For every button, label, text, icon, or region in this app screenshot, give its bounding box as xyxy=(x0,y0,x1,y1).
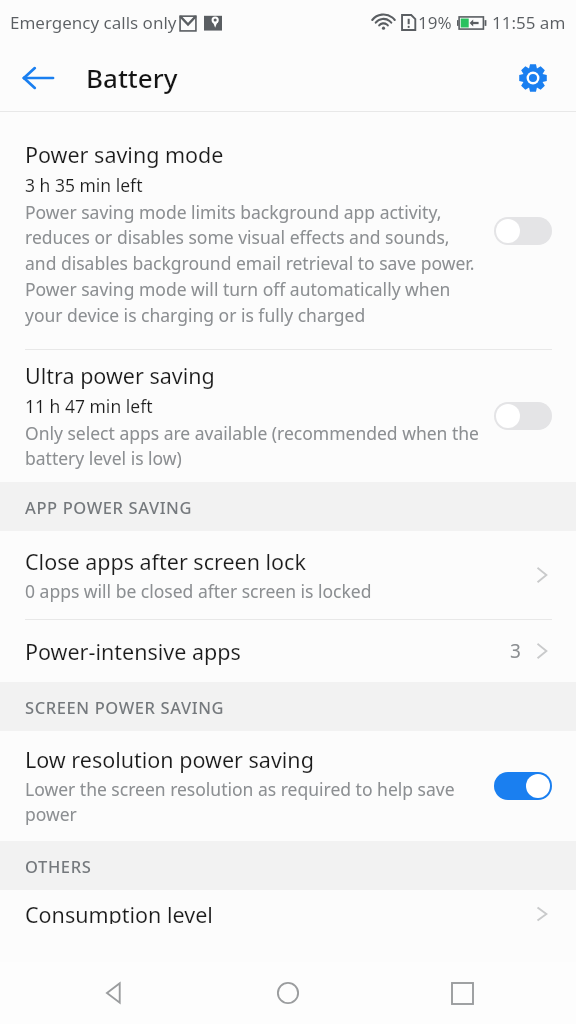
button[interactable]: Recents xyxy=(436,967,488,1019)
button[interactable]: Ultra power saving xyxy=(0,350,576,482)
button[interactable]: Toggle on xyxy=(492,771,554,801)
staticText: Emergency calls only xyxy=(10,11,177,34)
staticText: Power saving mode xyxy=(25,140,224,169)
staticText: Low resolution power saving xyxy=(25,745,314,774)
staticText: 11 h 47 min left xyxy=(25,394,153,418)
staticText: Consumption level xyxy=(25,900,213,924)
staticText: Only select apps are available (recommen… xyxy=(25,421,484,471)
button[interactable]: Power saving mode xyxy=(0,112,576,349)
button[interactable]: Home xyxy=(262,967,314,1019)
staticText: Power-intensive apps xyxy=(25,637,241,666)
staticText: 19% xyxy=(418,11,452,34)
button[interactable]: Power-intensive apps xyxy=(0,620,576,682)
staticText: Battery xyxy=(86,60,178,95)
staticText: 3 h 35 min left xyxy=(25,173,143,197)
staticText: Ultra power saving xyxy=(25,361,215,390)
button[interactable]: Back xyxy=(14,54,62,102)
staticText: Power saving mode limits background app … xyxy=(25,200,484,328)
staticText: 11:55 am xyxy=(492,11,566,34)
button[interactable]: Close apps after screen lock xyxy=(0,531,576,619)
staticText: 0 apps will be closed after screen is lo… xyxy=(25,579,372,603)
staticText: SCREEN POWER SAVING xyxy=(25,696,225,718)
button[interactable]: Toggle off xyxy=(492,401,554,431)
staticText: 3 xyxy=(510,638,521,664)
button[interactable]: Consumption level xyxy=(0,890,576,924)
staticText: Close apps after screen lock xyxy=(25,547,306,576)
staticText: APP POWER SAVING xyxy=(25,496,193,518)
staticText: OTHERS xyxy=(25,855,92,877)
button[interactable]: Settings xyxy=(511,56,555,100)
button[interactable]: Toggle off xyxy=(492,216,554,246)
staticText: Lower the screen resolution as required … xyxy=(25,777,482,827)
button[interactable]: Low resolution power saving xyxy=(0,731,576,841)
button[interactable]: Back xyxy=(88,967,140,1019)
